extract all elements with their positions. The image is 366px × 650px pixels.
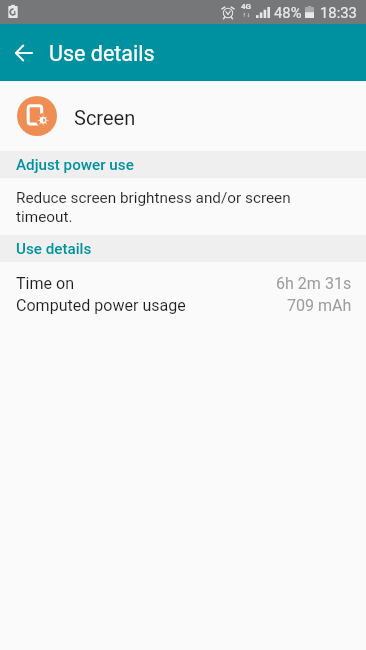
staticText: 709 mAh (287, 296, 352, 315)
staticText: Time on (16, 274, 75, 293)
staticText: Use details (16, 240, 92, 258)
button[interactable]: Back (0, 29, 48, 77)
button[interactable]: Computed power usage (0, 294, 366, 316)
staticText: Adjust power use (16, 156, 134, 174)
staticText: 6h 2m 31s (276, 274, 352, 293)
staticText: 4G (241, 2, 252, 11)
staticText: Reduce screen brightness and/or screen t… (16, 189, 346, 226)
button[interactable]: Time on (0, 272, 366, 294)
staticText: Use details (49, 41, 155, 66)
staticText: Computed power usage (16, 296, 186, 315)
staticText: Screen (74, 106, 136, 129)
staticText: 48% (274, 4, 302, 21)
staticText: 18:33 (320, 4, 357, 21)
